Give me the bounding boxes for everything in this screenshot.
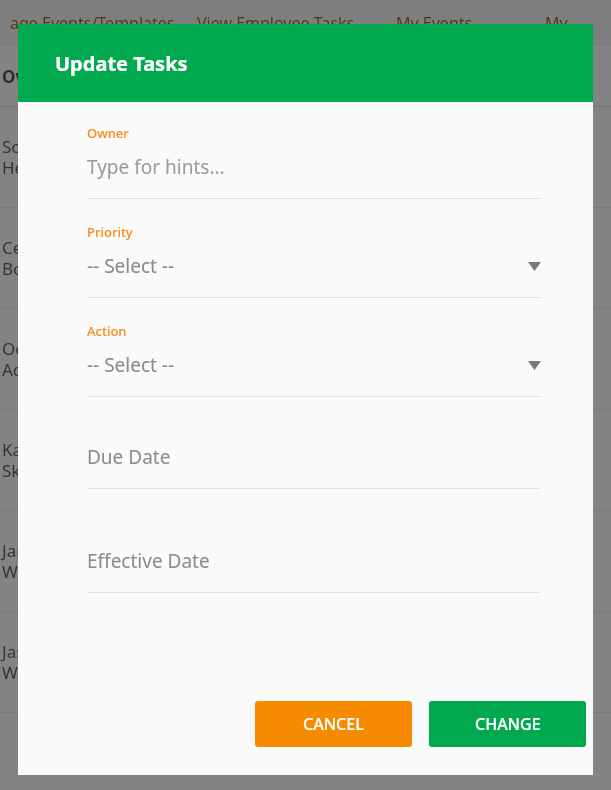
staticText: View Employee Tasks	[197, 12, 355, 34]
staticText: Priority	[87, 223, 133, 241]
other: Open dropdown	[528, 262, 541, 271]
staticText: Octavia Adams	[2, 337, 62, 381]
button[interactable]: -- Select --	[87, 253, 541, 279]
staticText: Cedric Boyle	[2, 236, 53, 280]
staticText: Jasmine Wright	[2, 640, 65, 684]
staticText: -- Select --	[87, 253, 528, 279]
staticText: Owner	[2, 65, 59, 88]
staticText: -- Select --	[87, 352, 528, 378]
staticText: age Events/Templates	[10, 12, 175, 34]
button[interactable]: Type for hints...	[87, 154, 541, 180]
staticText: Effective Date	[87, 548, 541, 574]
button[interactable]: Due Date	[87, 444, 541, 470]
staticText: CHANGE	[475, 713, 541, 735]
staticText: My Events	[396, 12, 473, 34]
staticText: Sophie Henderson	[2, 135, 91, 179]
staticText: My	[545, 12, 568, 34]
button[interactable]: My	[501, 0, 611, 46]
button[interactable]: CHANGE	[429, 701, 586, 747]
button[interactable]: My Events	[367, 0, 501, 46]
button[interactable]: Effective Date	[87, 548, 541, 574]
staticText: CANCEL	[303, 713, 364, 735]
staticText: Karl Skinner	[2, 438, 63, 482]
staticText: Action	[87, 322, 127, 340]
staticText: Owner	[87, 124, 129, 142]
button[interactable]: age Events/Templates	[0, 0, 184, 46]
staticText: Type for hints...	[87, 154, 541, 180]
staticText: James Ward	[2, 539, 50, 583]
button[interactable]: -- Select --	[87, 352, 541, 378]
staticText: Update Tasks	[55, 50, 188, 77]
other: Open dropdown	[528, 361, 541, 370]
button[interactable]: CANCEL	[255, 701, 412, 747]
button[interactable]: View Employee Tasks	[184, 0, 367, 46]
staticText: Due Date	[87, 444, 541, 470]
